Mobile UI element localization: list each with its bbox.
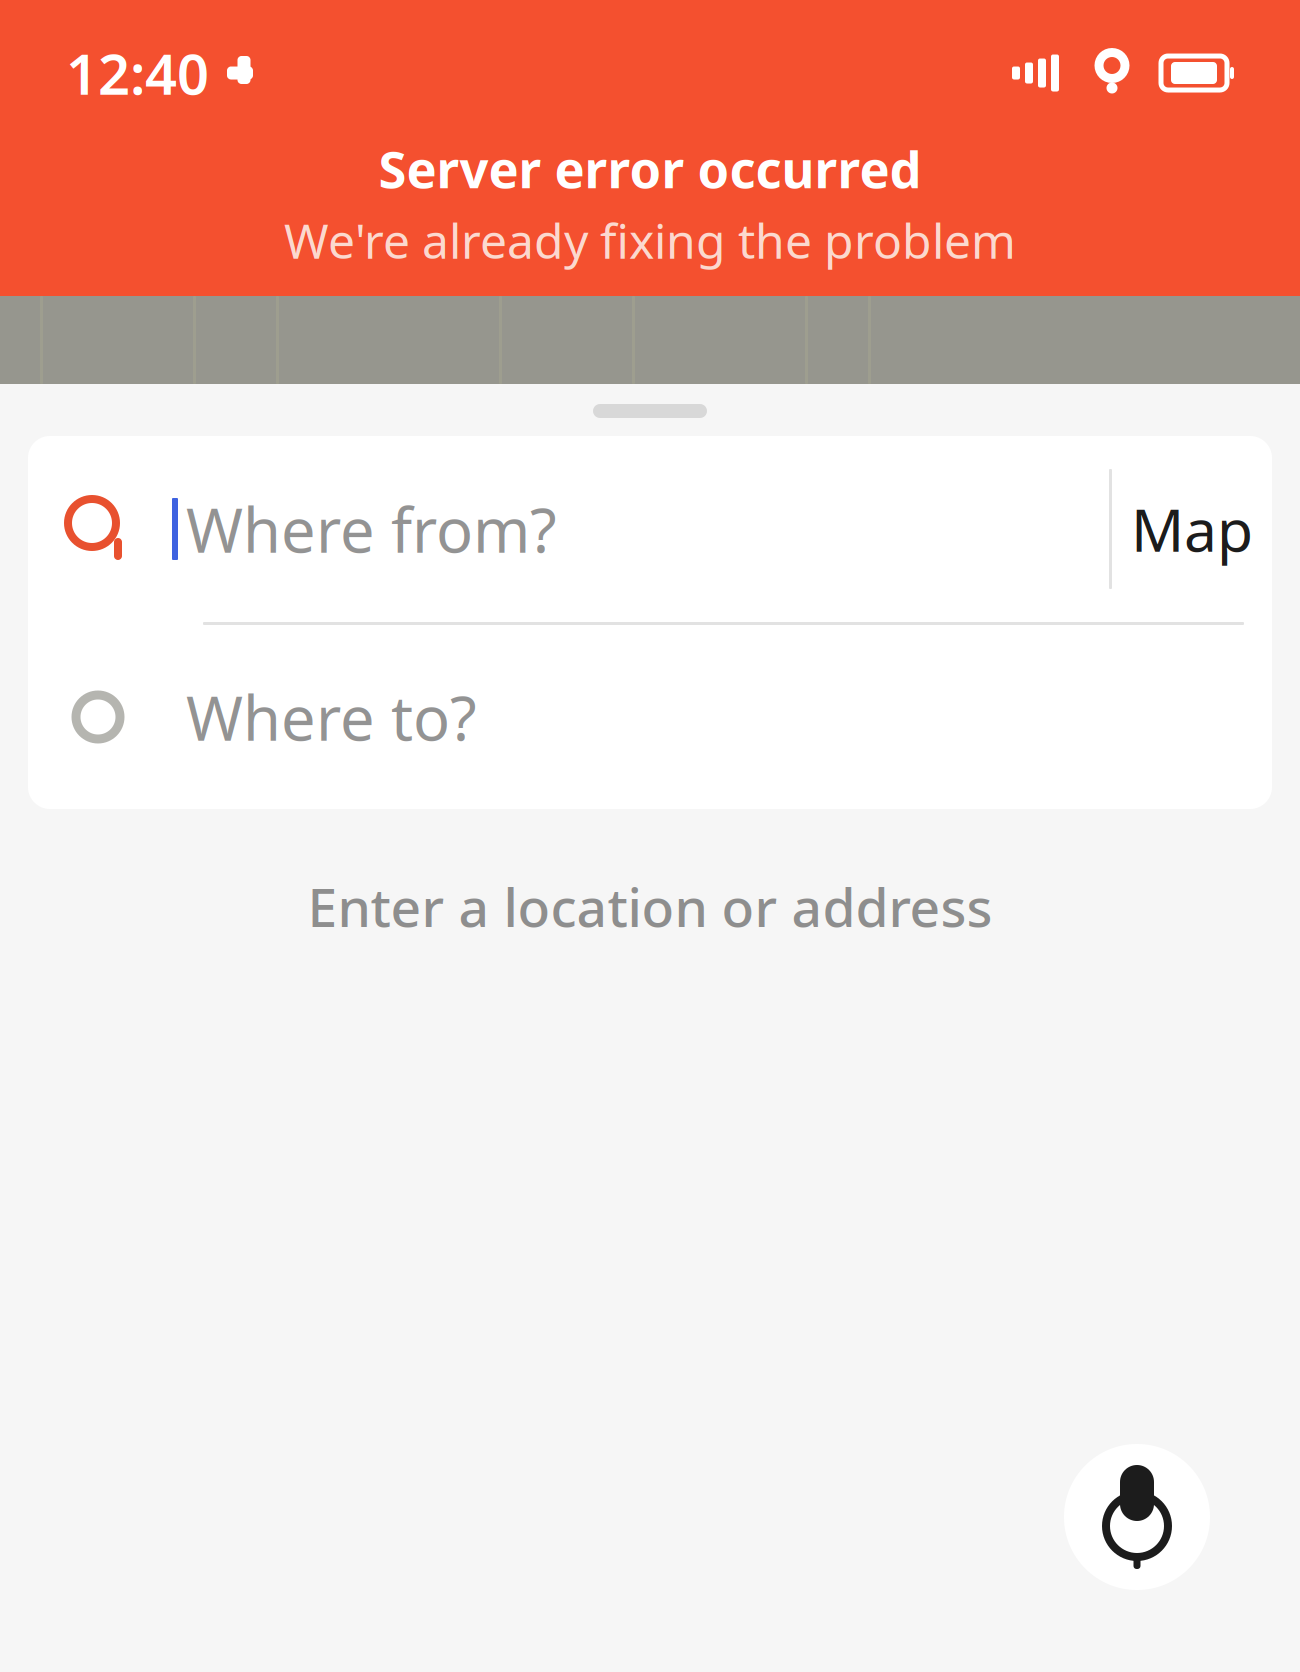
button[interactable]: Voice search [1064, 1444, 1210, 1590]
staticText: 12:40 [66, 36, 209, 110]
staticText: Where from? [186, 488, 557, 570]
staticText: Where to? [186, 676, 477, 758]
button[interactable]: Where to? [28, 625, 1272, 809]
staticText: Server error occurred [378, 135, 921, 202]
staticText: We're already fixing the problem [284, 208, 1016, 272]
staticText: Map [1131, 490, 1253, 568]
staticText: Enter a location or address [307, 871, 992, 942]
button[interactable]: Where from? [28, 436, 1272, 622]
